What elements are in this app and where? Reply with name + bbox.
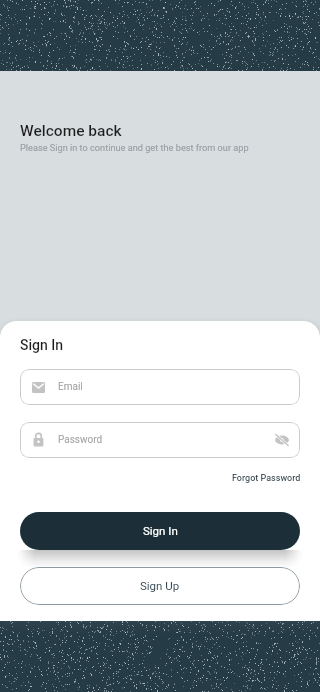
button[interactable]: Show password	[274, 432, 290, 448]
staticText: Welcome back	[20, 122, 122, 140]
button[interactable]: Password	[20, 422, 300, 458]
button[interactable]: Sign In	[20, 512, 300, 550]
staticText: Please Sign in to continue and get the b…	[20, 142, 249, 153]
staticText: Email	[58, 381, 83, 393]
staticText: Password	[58, 434, 103, 446]
staticText: Sign In	[20, 337, 63, 353]
button[interactable]: Forgot Password	[232, 473, 301, 484]
staticText: Sign Up	[140, 579, 180, 592]
button[interactable]: Sign Up	[20, 567, 300, 605]
staticText: Sign In	[143, 524, 178, 537]
staticText: Forgot Password	[232, 473, 301, 484]
button[interactable]: Email	[20, 369, 300, 405]
